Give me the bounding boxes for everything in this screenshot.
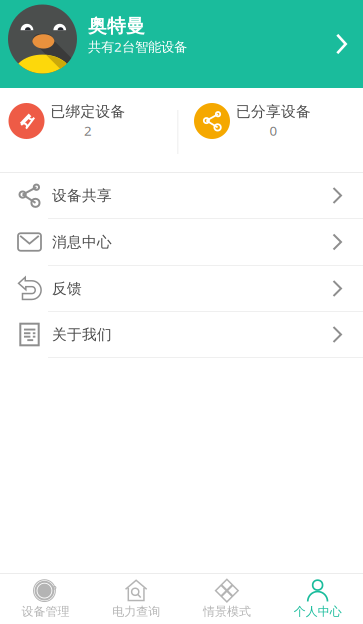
button[interactable]: 消息中心: [0, 219, 363, 265]
button[interactable]: 电力查询: [91, 574, 182, 624]
button[interactable]: 个人中心: [272, 574, 363, 624]
staticText: 奥特曼: [88, 15, 145, 38]
button[interactable]: 已分享设备: [178, 88, 363, 172]
staticText: 已绑定设备: [50, 103, 125, 121]
button[interactable]: 设备共享: [0, 173, 363, 218]
staticText: 共有2台智能设备: [88, 38, 187, 55]
staticText: 情景模式: [203, 604, 251, 619]
button[interactable]: 已绑定设备: [0, 88, 177, 172]
button[interactable]: 情景模式: [181, 574, 272, 624]
button[interactable]: 奥特曼: [0, 0, 363, 88]
staticText: 消息中心: [52, 233, 112, 251]
button[interactable]: 关于我们: [0, 312, 363, 357]
staticText: 设备共享: [52, 186, 112, 204]
staticText: 已分享设备: [236, 103, 311, 121]
staticText: 设备管理: [21, 604, 69, 619]
staticText: 关于我们: [52, 325, 112, 343]
staticText: 反馈: [52, 279, 82, 297]
staticText: 2: [84, 122, 92, 139]
button[interactable]: 反馈: [0, 266, 363, 311]
staticText: 0: [269, 122, 277, 139]
staticText: 电力查询: [112, 604, 160, 619]
button[interactable]: 设备管理: [0, 574, 91, 624]
staticText: 个人中心: [294, 604, 342, 619]
